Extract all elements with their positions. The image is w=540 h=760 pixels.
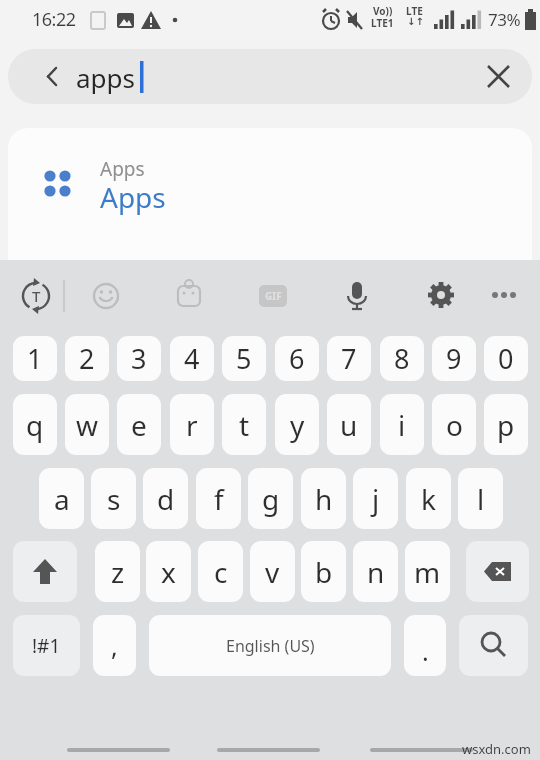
button[interactable]: 3 xyxy=(117,336,161,381)
button[interactable]: a xyxy=(39,468,84,529)
staticText: LTE xyxy=(406,4,423,18)
staticText: p xyxy=(497,406,515,444)
button[interactable]: 1 xyxy=(13,336,57,381)
staticText: 3 xyxy=(131,340,147,377)
button[interactable]: o xyxy=(432,394,476,455)
button[interactable]: Apps xyxy=(8,128,532,260)
button[interactable]: apps xyxy=(8,49,532,104)
staticText: English (US) xyxy=(226,635,315,657)
button[interactable]: u xyxy=(327,394,371,455)
button[interactable]: l xyxy=(458,468,503,529)
staticText: c xyxy=(214,553,228,591)
button[interactable]: 7 xyxy=(327,336,371,381)
button[interactable]: t xyxy=(222,394,266,455)
button[interactable]: r xyxy=(170,394,214,455)
staticText: 1 xyxy=(27,340,43,377)
staticText: GIF xyxy=(265,289,282,303)
staticText: T xyxy=(32,286,41,306)
button[interactable] xyxy=(13,541,77,602)
button[interactable] xyxy=(466,541,529,602)
staticText: 6 xyxy=(289,340,305,377)
staticText: , xyxy=(111,629,118,663)
button[interactable] xyxy=(335,274,379,318)
staticText: u xyxy=(340,406,358,444)
staticText: k xyxy=(421,480,436,518)
button[interactable]: 8 xyxy=(380,336,424,381)
staticText: 8 xyxy=(394,340,410,377)
staticText: 5 xyxy=(236,340,252,377)
button[interactable]: 9 xyxy=(432,336,476,381)
staticText: g xyxy=(262,480,280,518)
staticText: q xyxy=(26,406,44,444)
staticText: . xyxy=(422,634,429,668)
button[interactable]: e xyxy=(117,394,161,455)
staticText: h xyxy=(315,480,333,518)
staticText: n xyxy=(367,553,385,591)
staticText: m xyxy=(414,553,441,591)
button[interactable]: c xyxy=(198,541,243,602)
button[interactable]: p xyxy=(484,394,528,455)
staticText: y xyxy=(290,406,305,444)
staticText: 9 xyxy=(446,340,462,377)
staticText: 73% xyxy=(488,8,521,31)
button[interactable] xyxy=(168,274,212,318)
button[interactable] xyxy=(459,615,528,676)
button[interactable]: 0 xyxy=(484,336,528,381)
button[interactable]: v xyxy=(250,541,295,602)
staticText: 0 xyxy=(498,340,514,377)
button[interactable]: b xyxy=(301,541,346,602)
staticText: f xyxy=(214,480,224,518)
staticText: 2 xyxy=(79,340,95,377)
button[interactable]: j xyxy=(353,468,398,529)
staticText: z xyxy=(111,553,125,591)
button[interactable]: . xyxy=(404,615,446,676)
button[interactable]: , xyxy=(93,615,136,676)
staticText: v xyxy=(265,553,280,591)
staticText: j xyxy=(372,480,380,518)
button[interactable]: 2 xyxy=(65,336,109,381)
button[interactable]: k xyxy=(406,468,451,529)
button[interactable]: English (US) xyxy=(149,615,391,676)
button[interactable]: f xyxy=(196,468,241,529)
staticText: i xyxy=(398,406,406,444)
staticText: 16:22 xyxy=(32,7,76,32)
staticText: Apps xyxy=(100,178,166,216)
button[interactable]: x xyxy=(146,541,191,602)
staticText: e xyxy=(131,406,147,444)
staticText: l xyxy=(477,480,485,518)
button[interactable]: 6 xyxy=(275,336,319,381)
button[interactable]: i xyxy=(380,394,424,455)
button[interactable]: m xyxy=(405,541,450,602)
staticText: Apps xyxy=(100,156,145,182)
button[interactable]: 4 xyxy=(170,336,214,381)
staticText: LTE1 xyxy=(371,16,394,30)
staticText: d xyxy=(157,480,175,518)
button[interactable] xyxy=(84,274,128,318)
button[interactable]: y xyxy=(275,394,319,455)
button[interactable]: w xyxy=(65,394,109,455)
button[interactable]: g xyxy=(248,468,293,529)
staticText: ↓↑ xyxy=(407,16,424,28)
staticText: a xyxy=(54,480,70,518)
staticText: s xyxy=(107,480,121,518)
staticText: r xyxy=(186,406,198,444)
button[interactable]: q xyxy=(13,394,57,455)
button[interactable]: z xyxy=(95,541,140,602)
staticText: 7 xyxy=(341,340,357,377)
button[interactable]: !#1 xyxy=(13,615,80,676)
button[interactable]: d xyxy=(143,468,188,529)
button[interactable]: 5 xyxy=(222,336,266,381)
button[interactable]: T xyxy=(14,274,58,318)
button[interactable]: GIF xyxy=(259,285,287,307)
staticText: Vo)) xyxy=(373,4,393,18)
staticText: 4 xyxy=(184,340,200,377)
button[interactable] xyxy=(482,274,526,318)
button[interactable]: n xyxy=(353,541,398,602)
staticText: o xyxy=(446,406,463,444)
staticText: wsxdn.com xyxy=(462,740,531,758)
button[interactable]: s xyxy=(91,468,136,529)
staticText: t xyxy=(239,406,250,444)
button[interactable] xyxy=(419,274,463,318)
staticText: w xyxy=(76,406,99,444)
button[interactable]: h xyxy=(301,468,346,529)
